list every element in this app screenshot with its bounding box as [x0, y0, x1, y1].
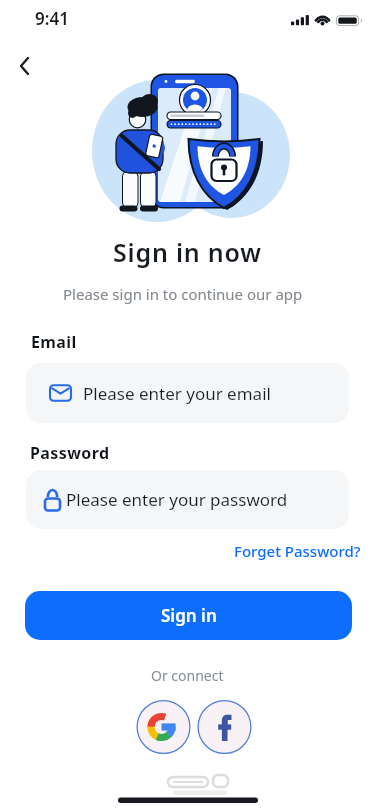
staticText: Please sign in to continue our app: [63, 284, 303, 304]
staticText: Forget Password?: [234, 541, 361, 561]
staticText: Email: [31, 331, 77, 353]
staticText: Sign in: [161, 604, 217, 627]
staticText: Password: [30, 442, 110, 464]
staticText: Or connect: [151, 666, 224, 685]
staticText: Sign in now: [113, 235, 262, 269]
staticText: 9:41: [35, 7, 69, 30]
staticText: Please enter your email: [83, 382, 271, 405]
staticText: Please enter your password: [66, 488, 288, 511]
